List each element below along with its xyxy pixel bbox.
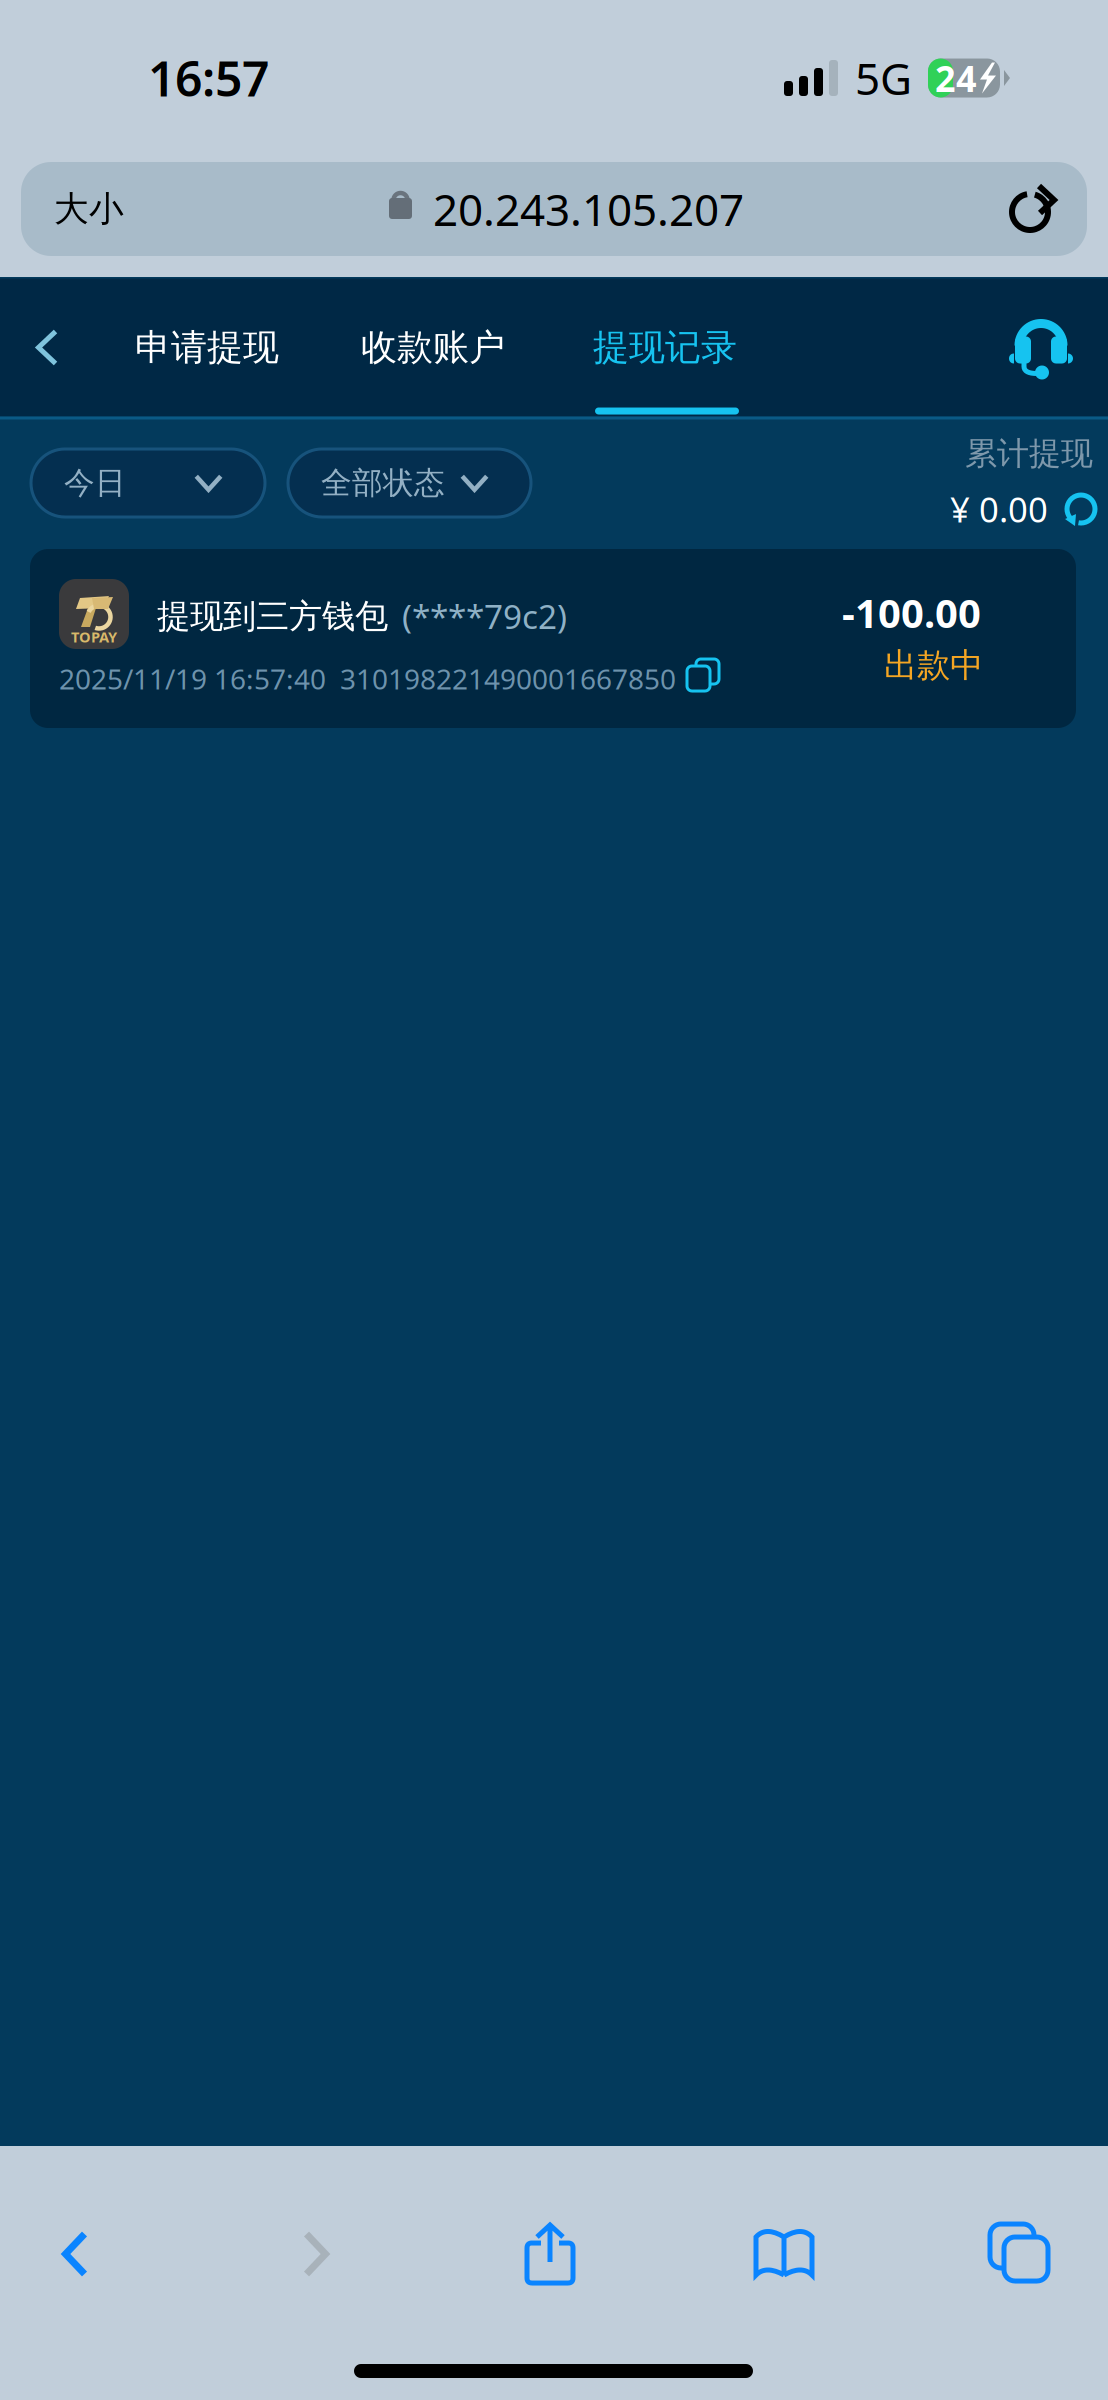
button[interactable]: 申请提现 (137, 278, 297, 416)
staticText: 提现到三方钱包 (157, 596, 388, 637)
button[interactable]: Tabs (960, 2199, 1080, 2309)
button[interactable]: Customer support (986, 277, 1096, 415)
button[interactable]: Back (0, 278, 94, 416)
button[interactable]: Refresh total (1064, 492, 1098, 526)
staticText: 16:57 (148, 46, 269, 110)
staticText: 全部状态 (321, 464, 445, 502)
staticText: 累计提现 (965, 434, 1093, 473)
staticText: TOPAY (71, 627, 117, 646)
staticText: 20.243.105.207 (433, 180, 744, 238)
button[interactable]: Bookmarks (724, 2199, 844, 2309)
button[interactable]: 收款账户 (363, 278, 523, 416)
button[interactable]: Share (490, 2199, 610, 2309)
button[interactable]: 全部状态 (288, 449, 531, 517)
button[interactable]: 今日 (31, 449, 265, 517)
staticText: (****79c2) (402, 594, 567, 638)
staticText: 5G (855, 49, 912, 107)
button[interactable]: Back (0, 2199, 150, 2309)
button[interactable]: Reload (1011, 162, 1087, 256)
button[interactable]: Copy order number (687, 659, 721, 693)
staticText: 2025/11/19 16:57:40 31019822149000166785… (59, 660, 676, 697)
staticText: 今日 (64, 464, 126, 502)
button[interactable]: Forward (241, 2199, 391, 2309)
staticText: -100.00 (842, 586, 981, 639)
button[interactable]: 大小 (21, 162, 146, 256)
staticText: 大小 (54, 188, 124, 230)
staticText: ¥ 0.00 (950, 486, 1048, 532)
staticText: 出款中 (884, 645, 983, 686)
staticText: 提现记录 (593, 325, 737, 370)
button[interactable]: 提现记录 (595, 278, 755, 416)
staticText: 24 (935, 54, 977, 102)
staticText: 收款账户 (361, 325, 505, 370)
staticText: 申请提现 (135, 325, 279, 370)
